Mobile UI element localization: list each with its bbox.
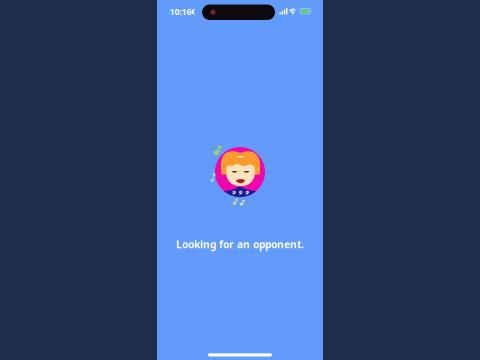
staticText: Looking for an opponent. bbox=[176, 237, 304, 251]
staticText: 10:16 bbox=[169, 5, 191, 17]
